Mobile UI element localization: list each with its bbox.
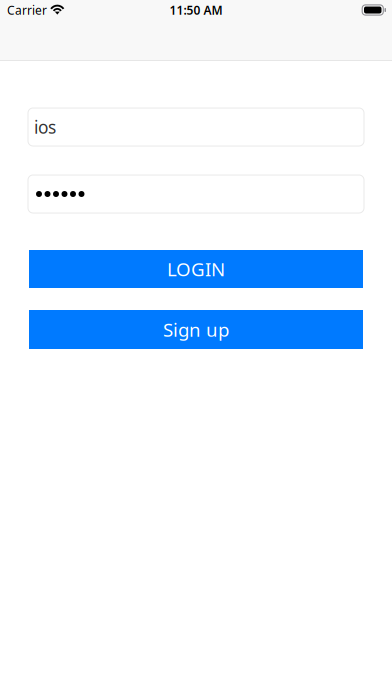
button[interactable]: Sign up xyxy=(29,310,363,349)
staticText: Carrier xyxy=(7,2,47,18)
button[interactable]: Username xyxy=(28,108,364,146)
staticText: Sign up xyxy=(163,317,229,342)
staticText: ios xyxy=(34,115,56,138)
button[interactable]: LOGIN xyxy=(29,250,363,288)
staticText: 11:50 AM xyxy=(169,2,222,18)
button[interactable]: Password xyxy=(28,175,364,213)
staticText: LOGIN xyxy=(167,257,225,281)
